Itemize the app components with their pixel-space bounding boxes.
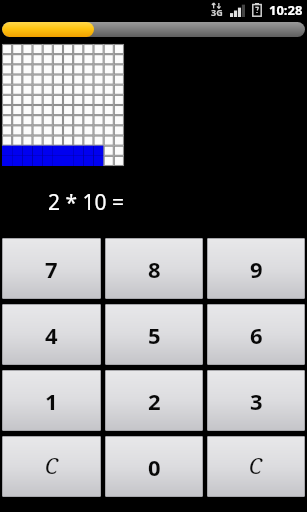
button[interactable]: 3 xyxy=(207,370,305,431)
button[interactable]: 7 xyxy=(2,238,101,299)
button[interactable]: Clear xyxy=(2,436,101,497)
staticText: 6 xyxy=(250,320,263,350)
staticText: 1 xyxy=(45,386,58,416)
button[interactable]: 5 xyxy=(105,304,203,365)
button[interactable]: 8 xyxy=(105,238,203,299)
staticText: 2 * 10 = xyxy=(48,188,124,212)
staticText: 3G xyxy=(211,6,223,18)
staticText: 2 xyxy=(148,386,161,416)
staticText: C xyxy=(249,452,263,481)
staticText: 0 xyxy=(148,452,161,482)
staticText: C xyxy=(45,452,59,481)
staticText: 4 xyxy=(45,320,58,350)
button[interactable]: 2 xyxy=(105,370,203,431)
staticText: 7 xyxy=(45,254,58,284)
button[interactable]: 9 xyxy=(207,238,305,299)
staticText: 3 xyxy=(250,386,263,416)
button[interactable]: Clear xyxy=(207,436,305,497)
staticText: 5 xyxy=(148,320,161,350)
staticText: 10:28 xyxy=(269,1,303,19)
button[interactable]: 1 xyxy=(2,370,101,431)
button[interactable]: 4 xyxy=(2,304,101,365)
staticText: 8 xyxy=(148,254,161,284)
button[interactable]: 6 xyxy=(207,304,305,365)
button[interactable]: 0 xyxy=(105,436,203,497)
staticText: 9 xyxy=(250,254,263,284)
